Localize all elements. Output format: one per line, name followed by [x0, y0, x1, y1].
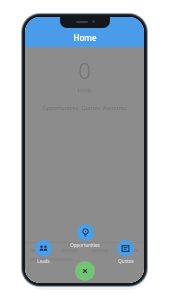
staticText: Quotes [118, 258, 134, 264]
staticText: Home [73, 32, 97, 43]
staticText: Opportunities Quotes Accounts [25, 104, 144, 111]
button[interactable]: Opportunities [69, 224, 101, 248]
button[interactable]: Quotes [116, 240, 135, 264]
staticText: Opportunities [70, 242, 100, 248]
button[interactable]: Close menu [75, 261, 95, 281]
staticText: Leads [37, 258, 50, 264]
button[interactable]: Leads [34, 240, 53, 264]
